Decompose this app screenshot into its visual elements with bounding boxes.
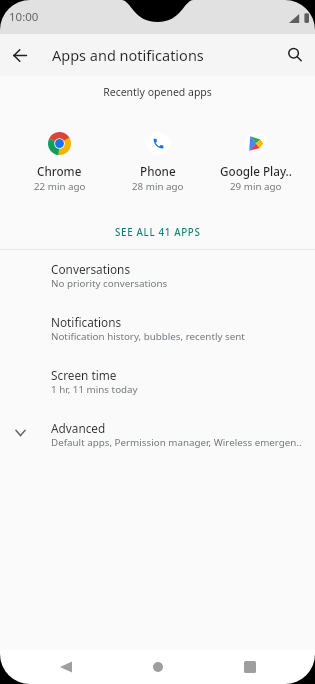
staticText: SEE ALL 41 APPS xyxy=(115,226,201,239)
staticText: No priority conversations xyxy=(51,277,168,290)
button[interactable]: Notifications xyxy=(0,303,315,356)
staticText: Screen time xyxy=(51,367,117,383)
button[interactable]: Advanced xyxy=(0,409,315,462)
button[interactable]: Home xyxy=(136,650,180,684)
staticText: 28 min ago xyxy=(132,180,184,193)
staticText: Notifications xyxy=(51,314,122,330)
button[interactable]: Phone xyxy=(109,132,207,193)
button[interactable]: Back xyxy=(44,650,88,684)
staticText: Default apps, Permission manager, Wirele… xyxy=(51,436,302,449)
button[interactable]: Chrome xyxy=(10,132,109,193)
staticText: Conversations xyxy=(51,261,131,277)
staticText: 10:00 xyxy=(9,9,39,25)
staticText: 1 hr, 11 mins today xyxy=(51,383,138,396)
button[interactable]: SEE ALL 41 APPS xyxy=(105,222,211,243)
staticText: 22 min ago xyxy=(34,180,86,193)
staticText: Chrome xyxy=(37,163,82,179)
staticText: Phone xyxy=(140,163,176,179)
staticText: Apps and notifications xyxy=(52,45,204,65)
button[interactable]: Recents xyxy=(228,650,272,684)
button[interactable]: Search xyxy=(275,34,315,76)
button[interactable]: Conversations xyxy=(0,250,315,303)
staticText: Notification history, bubbles, recently … xyxy=(51,330,245,343)
staticText: 29 min ago xyxy=(230,180,282,193)
staticText: Advanced xyxy=(51,420,106,436)
button[interactable]: Google Play.. xyxy=(207,132,305,193)
button[interactable]: Screen time xyxy=(0,356,315,409)
button[interactable]: Back xyxy=(0,34,40,76)
staticText: Google Play.. xyxy=(220,163,292,179)
staticText: Recently opened apps xyxy=(0,85,315,99)
